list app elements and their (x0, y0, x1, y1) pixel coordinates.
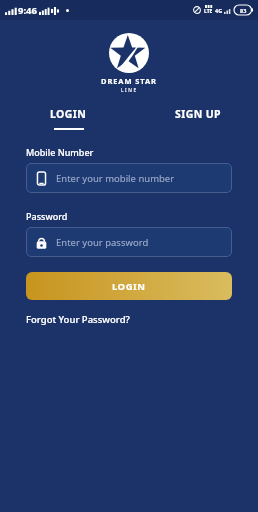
staticText: SIGN UP (175, 107, 221, 121)
staticText: LINE (121, 87, 138, 94)
staticText: LTE (204, 8, 213, 15)
button[interactable]: LOGIN (26, 105, 111, 132)
button[interactable]: SIGN UP (164, 105, 232, 132)
staticText: LOGIN (112, 280, 146, 293)
button[interactable]: Forgot Your Password? (26, 313, 130, 326)
staticText: 83 (240, 7, 247, 14)
staticText: Password (26, 210, 68, 222)
staticText: 4G (215, 7, 223, 14)
button[interactable]: LOGIN (26, 272, 232, 300)
button[interactable]: Enter your password (26, 227, 232, 257)
button[interactable]: Enter your mobile number (26, 163, 232, 193)
staticText: Enter your mobile number (56, 172, 175, 185)
staticText: Mobile Number (26, 146, 94, 158)
staticText: DREAM STAR (101, 76, 157, 86)
staticText: Enter your password (56, 236, 149, 249)
staticText: LOGIN (50, 107, 87, 121)
staticText: 9:46 (18, 4, 37, 17)
